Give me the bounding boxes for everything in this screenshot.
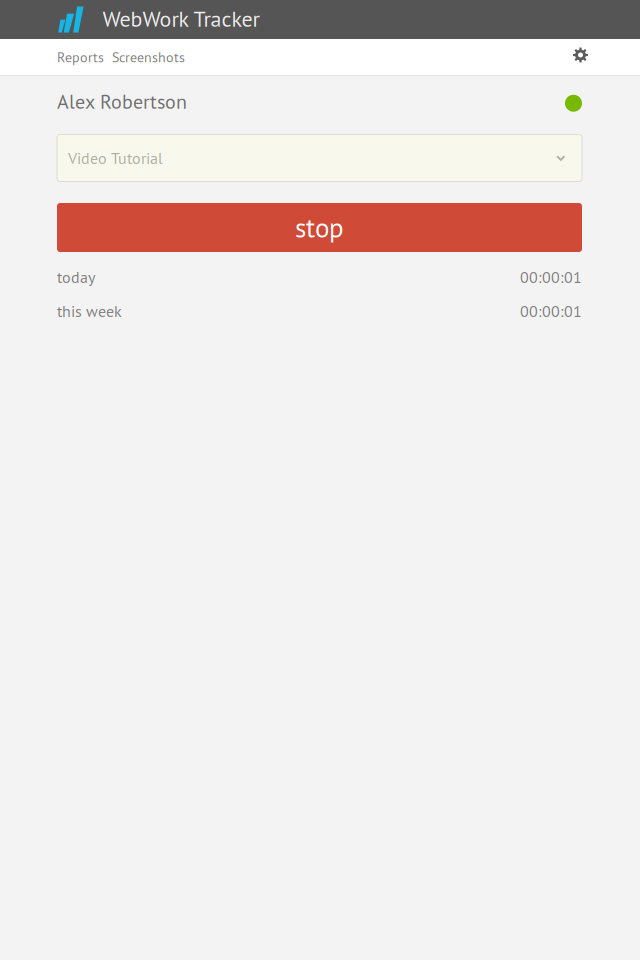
staticText: today (57, 267, 95, 287)
button[interactable]: Settings (573, 39, 640, 75)
staticText: Screenshots (112, 48, 185, 66)
staticText: Alex Robertson (57, 88, 187, 114)
staticText: Reports (57, 48, 104, 66)
staticText: 00:00:01 (520, 301, 582, 321)
button[interactable]: stop (57, 203, 582, 252)
staticText: WebWork Tracker (102, 4, 259, 33)
staticText: stop (295, 210, 344, 245)
staticText: Video Tutorial (68, 148, 163, 168)
staticText: 00:00:01 (520, 267, 582, 287)
button[interactable]: Reports (0, 39, 108, 75)
button[interactable]: Video Tutorial (57, 134, 582, 181)
staticText: this week (57, 301, 122, 321)
button[interactable]: Screenshots (108, 39, 191, 75)
